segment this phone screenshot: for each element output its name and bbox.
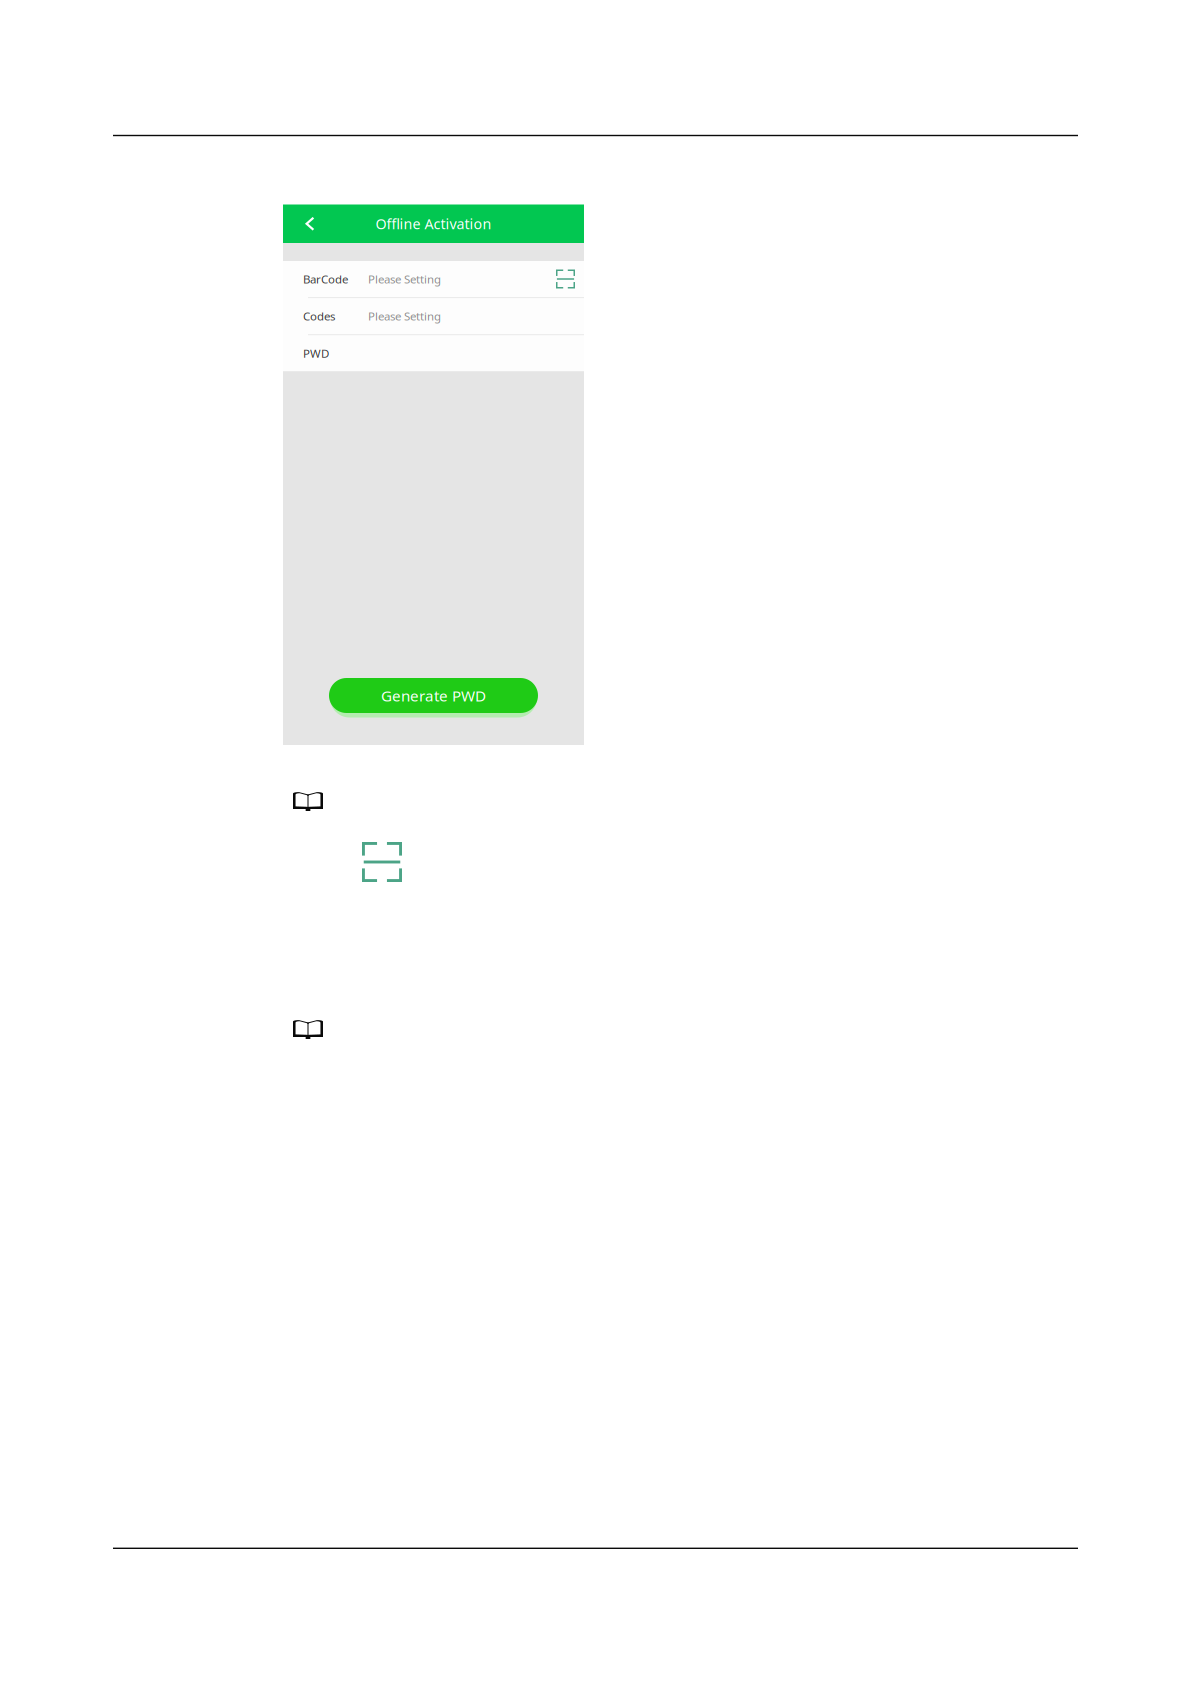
staticText: Please Setting <box>368 271 441 287</box>
staticText: BarCode <box>303 271 348 287</box>
button[interactable]: Generate PWD <box>326 674 541 716</box>
button[interactable]: Scan barcode <box>556 269 575 288</box>
staticText: Please Setting <box>368 308 441 324</box>
button[interactable]: Back <box>283 205 327 243</box>
staticText: Codes <box>303 308 335 324</box>
staticText: Generate PWD <box>381 685 486 706</box>
staticText: PWD <box>303 345 329 361</box>
staticText: Offline Activation <box>375 214 491 233</box>
